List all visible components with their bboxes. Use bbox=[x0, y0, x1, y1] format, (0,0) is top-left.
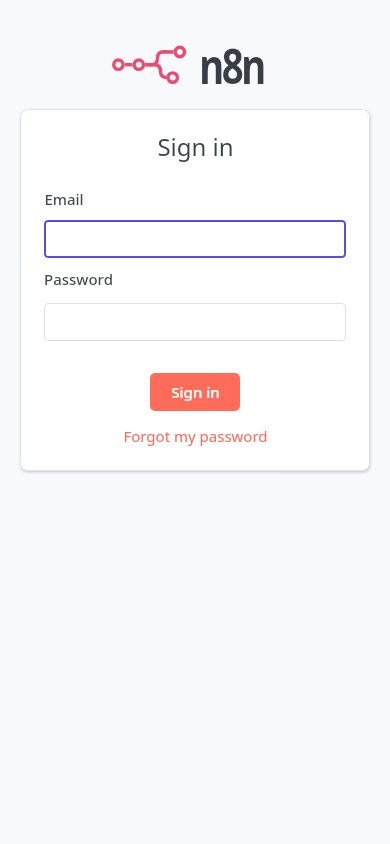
button[interactable] bbox=[44, 303, 346, 341]
staticText: n8n bbox=[199, 33, 264, 98]
button[interactable] bbox=[44, 220, 346, 258]
staticText: Sign in bbox=[157, 130, 234, 163]
button[interactable]: Forgot my password bbox=[123, 426, 268, 446]
staticText: Forgot my password bbox=[123, 426, 268, 446]
staticText: Email bbox=[44, 189, 84, 209]
staticText: Sign in bbox=[171, 382, 220, 402]
staticText: Password bbox=[44, 269, 113, 289]
button[interactable]: Sign in bbox=[150, 373, 240, 411]
